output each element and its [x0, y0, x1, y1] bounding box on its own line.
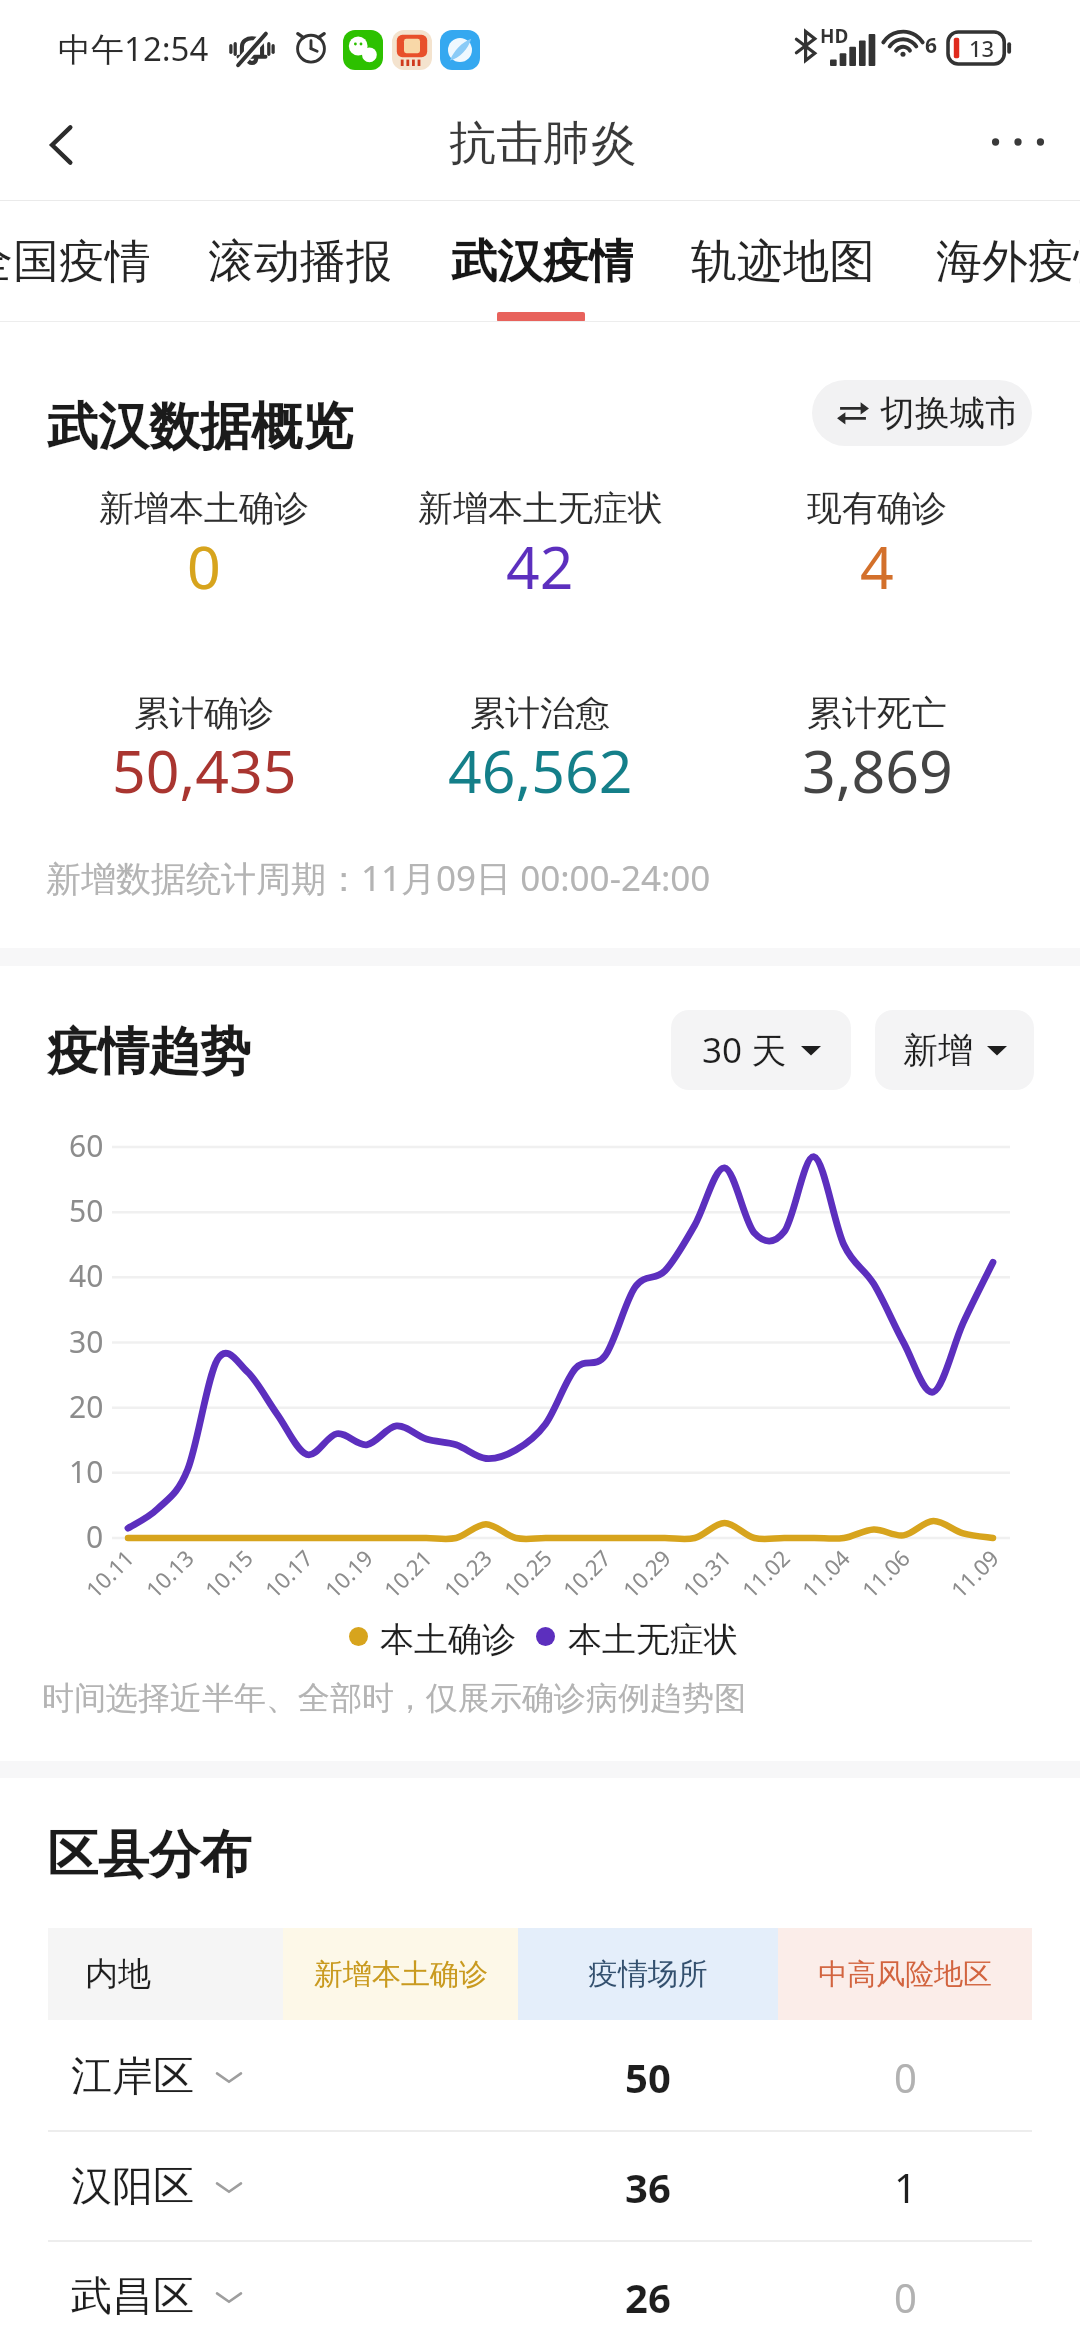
- staticText: 时间选择近半年、全部时，仅展示确诊病例趋势图: [42, 1678, 746, 1718]
- staticText: 本土无症状: [568, 1618, 738, 1661]
- staticText: 10.29: [616, 1542, 677, 1604]
- staticText: 累计确诊: [134, 691, 274, 735]
- button[interactable]: Back: [24, 107, 100, 183]
- staticText: 疫情趋势: [47, 1020, 251, 1084]
- button[interactable]: 海外疫情: [936, 201, 1080, 322]
- staticText: 0: [894, 2270, 917, 2324]
- staticText: 新增本土确诊: [314, 1956, 488, 1993]
- staticText: 50: [625, 2050, 671, 2104]
- staticText: 11.06: [855, 1542, 916, 1604]
- staticText: 30: [69, 1321, 104, 1362]
- button[interactable]: 武汉疫情: [451, 201, 633, 322]
- button[interactable]: 30 天: [671, 1010, 851, 1090]
- staticText: 中高风险地区: [818, 1956, 992, 1993]
- staticText: 切换城市: [880, 391, 1014, 435]
- button[interactable]: 江岸区: [0, 2022, 1080, 2132]
- staticText: 10.19: [318, 1542, 379, 1604]
- staticText: 新增数据统计周期：11月09日 00:00-24:00: [46, 854, 711, 902]
- button[interactable]: 新增: [875, 1010, 1034, 1090]
- staticText: 10: [69, 1451, 104, 1492]
- staticText: 46,562: [448, 730, 633, 810]
- staticText: 11.02: [735, 1542, 796, 1604]
- staticText: 10.23: [437, 1542, 498, 1604]
- staticText: 汉阳区: [71, 2161, 194, 2213]
- staticText: 50,435: [112, 730, 297, 810]
- staticText: 轨迹地图: [691, 233, 873, 291]
- staticText: 13: [969, 33, 995, 63]
- staticText: 现有确诊: [807, 486, 947, 530]
- staticText: 10.15: [198, 1542, 259, 1604]
- staticText: 10.25: [497, 1542, 558, 1604]
- staticText: 10.17: [258, 1542, 319, 1604]
- staticText: 40: [69, 1255, 104, 1296]
- button[interactable]: 切换城市: [812, 380, 1032, 446]
- staticText: 武汉疫情: [451, 233, 633, 291]
- staticText: 60: [69, 1125, 104, 1166]
- staticText: 50: [69, 1190, 104, 1231]
- staticText: 抗击肺炎: [449, 114, 637, 173]
- staticText: 4: [860, 526, 894, 606]
- staticText: 36: [625, 2160, 671, 2214]
- staticText: 武汉数据概览: [47, 395, 353, 459]
- staticText: 海外疫情: [936, 233, 1080, 291]
- staticText: 10.31: [676, 1542, 737, 1604]
- staticText: 30 天: [702, 1026, 787, 1074]
- staticText: 10.11: [79, 1542, 140, 1604]
- staticText: 新增本土无症状: [418, 486, 663, 530]
- staticText: 10.13: [139, 1542, 200, 1604]
- staticText: 滚动播报: [208, 233, 390, 291]
- staticText: 全国疫情: [0, 233, 149, 291]
- staticText: 区县分布: [47, 1823, 251, 1887]
- staticText: 累计死亡: [807, 691, 947, 735]
- button[interactable]: 轨迹地图: [691, 201, 873, 322]
- staticText: 中午12:54: [58, 26, 209, 71]
- staticText: 11.04: [795, 1542, 856, 1604]
- staticText: 新增: [903, 1028, 973, 1072]
- staticText: 0: [187, 526, 221, 606]
- staticText: 武昌区: [71, 2271, 194, 2323]
- staticText: 内地: [85, 1953, 151, 1995]
- staticText: 10.21: [377, 1542, 438, 1604]
- staticText: 累计治愈: [470, 691, 610, 735]
- staticText: 1: [894, 2160, 917, 2214]
- button[interactable]: 全国疫情: [0, 201, 149, 322]
- staticText: 26: [625, 2270, 671, 2324]
- staticText: 11.09: [944, 1542, 1005, 1604]
- staticText: 0: [894, 2050, 917, 2104]
- staticText: 新增本土确诊: [99, 486, 309, 530]
- staticText: HD: [820, 23, 849, 49]
- button[interactable]: 汉阳区: [0, 2132, 1080, 2242]
- staticText: 本土确诊: [380, 1618, 516, 1661]
- staticText: 0: [86, 1516, 104, 1557]
- staticText: 20: [69, 1386, 104, 1427]
- staticText: 10.27: [556, 1542, 617, 1604]
- staticText: 3,869: [802, 730, 953, 810]
- staticText: 6: [925, 31, 938, 60]
- staticText: 江岸区: [71, 2051, 194, 2103]
- staticText: 42: [506, 526, 574, 606]
- button[interactable]: 滚动播报: [208, 201, 390, 322]
- staticText: 疫情场所: [588, 1955, 708, 1993]
- button[interactable]: More options: [980, 104, 1056, 180]
- button[interactable]: 武昌区: [0, 2242, 1080, 2340]
